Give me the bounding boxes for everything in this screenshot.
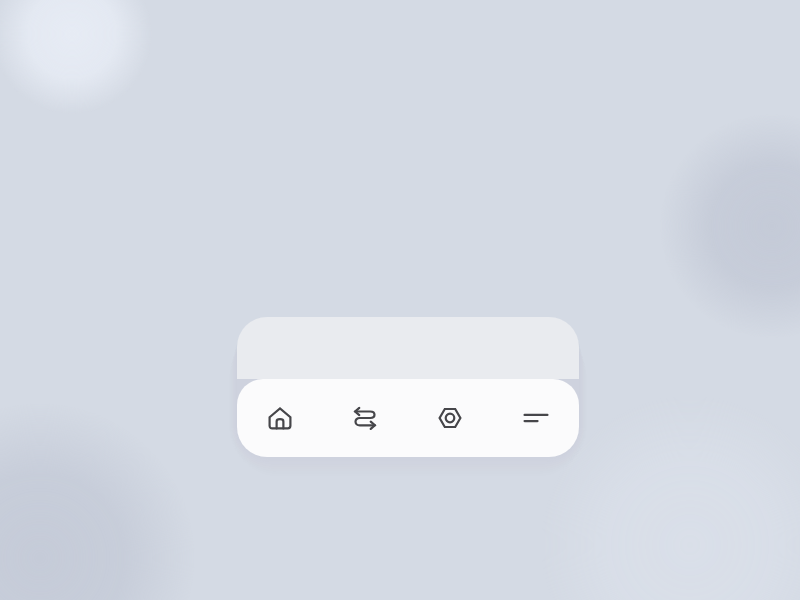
button[interactable]: Transfer <box>322 379 407 457</box>
button[interactable]: Menu <box>493 379 579 457</box>
button[interactable]: Settings <box>407 379 493 457</box>
button[interactable]: Home <box>237 379 322 457</box>
